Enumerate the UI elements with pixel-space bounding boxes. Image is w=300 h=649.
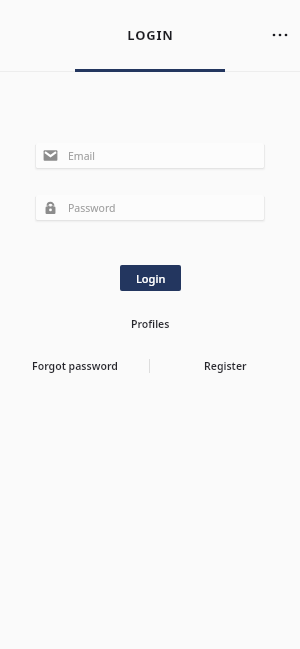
- button[interactable]: Profiles: [123, 314, 178, 334]
- button[interactable]: Password: [36, 195, 264, 220]
- staticText: Email: [68, 149, 95, 163]
- button[interactable]: Login: [120, 265, 181, 291]
- button[interactable]: Forgot password: [26, 355, 124, 377]
- button[interactable]: Email: [36, 143, 264, 168]
- button[interactable]: More options: [260, 15, 300, 55]
- staticText: Register: [204, 359, 247, 373]
- staticText: LOGIN: [127, 26, 174, 44]
- staticText: Login: [136, 271, 166, 286]
- staticText: Password: [68, 201, 116, 215]
- staticText: Profiles: [131, 317, 170, 331]
- staticText: Forgot password: [32, 359, 118, 373]
- button[interactable]: Register: [198, 355, 253, 377]
